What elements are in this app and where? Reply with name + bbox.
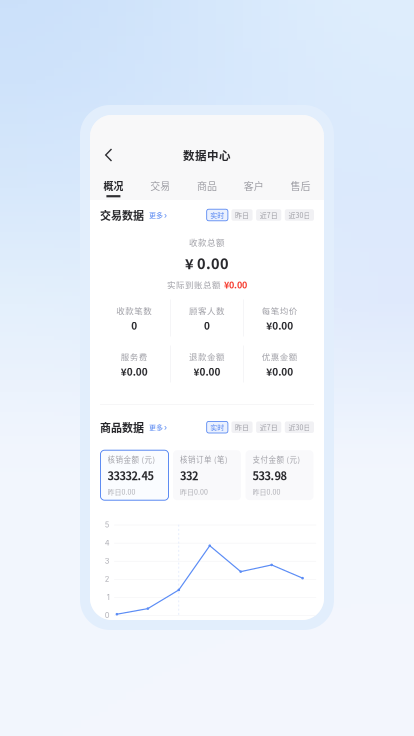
staticText: 概况 xyxy=(103,178,123,193)
staticText: 商品数据 xyxy=(100,419,144,435)
button[interactable]: 概况 xyxy=(90,176,137,200)
staticText: 售后 xyxy=(291,178,311,193)
staticText: 近30日 xyxy=(288,210,310,220)
staticText: 昨日0.00 xyxy=(180,486,208,497)
button[interactable]: 更多 xyxy=(144,419,167,435)
button[interactable]: 核销订单 (笔) xyxy=(173,450,241,500)
staticText: 3 xyxy=(105,556,110,565)
button[interactable]: 昨日 xyxy=(231,209,253,221)
staticText: ¥0.00 xyxy=(224,278,247,291)
staticText: 昨日 xyxy=(235,210,249,220)
button[interactable]: 更多 xyxy=(144,207,167,223)
staticText: 核销金额 (元) xyxy=(107,454,155,465)
staticText: 数据中心 xyxy=(183,147,231,163)
button[interactable]: Back xyxy=(90,141,122,169)
button[interactable]: 近30日 xyxy=(285,209,314,221)
staticText: ¥0.00 xyxy=(193,364,220,379)
staticText: 近7日 xyxy=(260,422,278,432)
staticText: 昨日 xyxy=(235,422,249,432)
staticText: 实时 xyxy=(210,422,224,432)
button[interactable]: 客户 xyxy=(230,176,277,200)
staticText: 收款笔数 xyxy=(116,304,152,317)
staticText: 0 xyxy=(131,318,137,333)
staticText: 交易 xyxy=(150,178,170,193)
staticText: 实际到账总额 xyxy=(167,278,221,291)
staticText: 昨日0.00 xyxy=(107,486,135,497)
staticText: ¥0.00 xyxy=(121,364,148,379)
button[interactable]: 售后 xyxy=(277,176,324,200)
button[interactable]: 支付金额 (元) xyxy=(245,450,313,500)
staticText: 收款总额 xyxy=(189,236,225,248)
staticText: 商品 xyxy=(197,178,217,193)
button[interactable]: 实时 xyxy=(207,209,228,221)
staticText: 更多 xyxy=(149,210,163,220)
staticText: 332 xyxy=(180,468,198,483)
staticText: 533.98 xyxy=(252,468,286,483)
staticText: ¥ 0.00 xyxy=(185,252,229,273)
staticText: 33332.45 xyxy=(107,468,153,483)
staticText: 顾客人数 xyxy=(189,304,225,317)
staticText: 更多 xyxy=(149,422,163,432)
staticText: 1 xyxy=(107,593,110,602)
staticText: 退款金额 xyxy=(189,350,225,363)
staticText: › xyxy=(164,210,167,220)
button[interactable]: 近30日 xyxy=(285,421,314,433)
staticText: 0 xyxy=(204,318,210,333)
staticText: 每笔均价 xyxy=(262,304,298,317)
staticText: ¥0.00 xyxy=(266,318,293,333)
staticText: 昨日0.00 xyxy=(252,486,280,497)
staticText: 服务费 xyxy=(121,350,148,363)
button[interactable]: 商品 xyxy=(184,176,230,200)
staticText: 优惠金额 xyxy=(262,350,298,363)
staticText: 近30日 xyxy=(288,422,310,432)
button[interactable]: 近7日 xyxy=(256,421,281,433)
staticText: 近7日 xyxy=(260,210,278,220)
staticText: › xyxy=(164,422,167,432)
staticText: 实时 xyxy=(210,210,224,220)
staticText: 客户 xyxy=(244,178,264,193)
staticText: ¥0.00 xyxy=(266,364,293,379)
staticText: 0 xyxy=(105,611,110,620)
staticText: 支付金额 (元) xyxy=(252,454,300,465)
staticText: 5 xyxy=(105,520,110,529)
button[interactable]: 实时 xyxy=(207,421,228,433)
staticText: 2 xyxy=(105,574,110,584)
button[interactable]: 昨日 xyxy=(231,421,253,433)
staticText: 交易数据 xyxy=(100,207,144,223)
staticText: 4 xyxy=(105,538,110,547)
staticText: 核销订单 (笔) xyxy=(180,454,228,465)
button[interactable]: 近7日 xyxy=(256,209,281,221)
button[interactable]: 交易 xyxy=(137,176,184,200)
button[interactable]: 核销金额 (元) xyxy=(100,450,168,500)
